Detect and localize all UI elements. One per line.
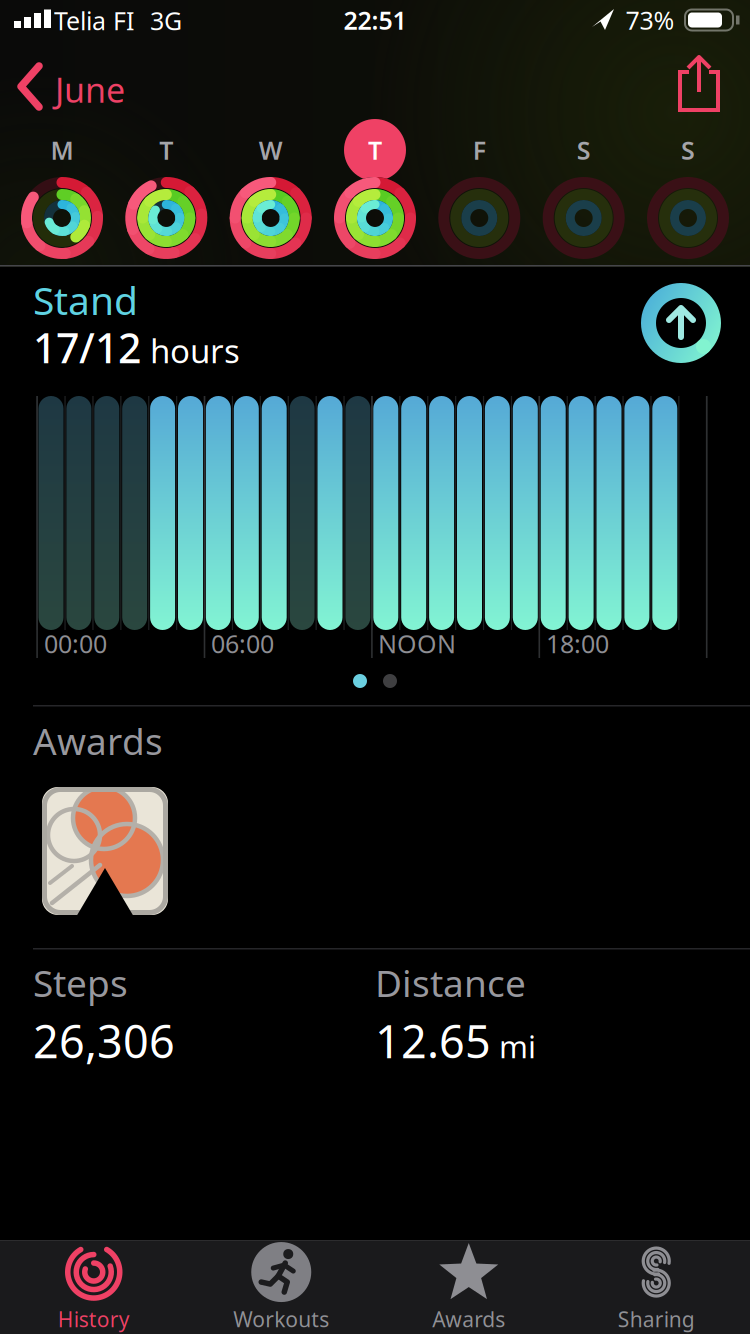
staticText: T [159, 133, 173, 167]
staticText: F [473, 133, 486, 167]
staticText: S [577, 133, 591, 167]
button[interactable] [345, 666, 405, 696]
staticText: June [55, 67, 125, 112]
button[interactable] [658, 55, 738, 125]
staticText: W [259, 133, 283, 167]
staticText: Telia FI [54, 4, 134, 37]
button[interactable]: Sharing [562, 1242, 750, 1332]
staticText: 18:00 [546, 627, 609, 660]
staticText: T [368, 133, 382, 167]
staticText: Workouts [233, 1305, 329, 1333]
button[interactable] [427, 166, 531, 270]
button[interactable] [219, 166, 323, 270]
button[interactable]: June [17, 47, 152, 125]
button[interactable] [532, 166, 636, 270]
staticText: Sharing [618, 1305, 695, 1333]
staticText: 73% [625, 3, 674, 37]
button[interactable] [10, 166, 114, 270]
button[interactable] [323, 166, 427, 270]
staticText: Distance [375, 958, 526, 1007]
staticText: mi [499, 1026, 536, 1067]
button[interactable]: Awards [375, 1242, 562, 1332]
button[interactable] [636, 278, 726, 368]
button[interactable]: History [0, 1242, 187, 1332]
staticText: 3G [150, 4, 182, 37]
staticText: hours [150, 328, 240, 372]
button[interactable] [114, 166, 218, 270]
staticText: S [681, 133, 695, 167]
staticText: Stand [33, 274, 138, 326]
staticText: 26,306 [33, 1011, 175, 1071]
button[interactable] [42, 787, 168, 916]
staticText: 00:00 [44, 627, 107, 660]
staticText: Awards [432, 1305, 505, 1333]
button[interactable] [636, 166, 740, 270]
staticText: NOON [378, 627, 456, 660]
staticText: 06:00 [211, 627, 274, 660]
button[interactable]: Workouts [187, 1242, 375, 1332]
staticText: Steps [33, 958, 128, 1007]
staticText: 17/12 [33, 320, 141, 374]
staticText: M [50, 133, 73, 167]
staticText: Awards [33, 716, 163, 765]
staticText: 12.65 [375, 1011, 491, 1071]
staticText: History [58, 1305, 130, 1333]
staticText: 22:51 [343, 3, 406, 37]
